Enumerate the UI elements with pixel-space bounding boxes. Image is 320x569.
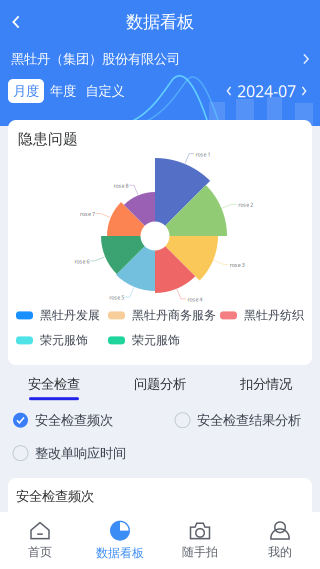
staticText: 随手拍 <box>182 545 218 559</box>
staticText: 首页 <box>28 545 52 559</box>
button[interactable]: 问题分析 <box>107 373 213 403</box>
button[interactable]: 随手拍 <box>160 512 240 568</box>
staticText: 扣分情况 <box>240 376 292 392</box>
button[interactable]: 数据看板 <box>80 512 160 568</box>
button[interactable]: 年度 <box>44 79 82 103</box>
button[interactable]: 自定义 <box>82 79 128 103</box>
staticText: 荣元服饰 <box>40 333 88 348</box>
staticText: rose 3 <box>230 261 245 268</box>
button[interactable]: Next period <box>296 79 312 103</box>
staticText: 数据看板 <box>96 546 144 560</box>
staticText: 问题分析 <box>134 376 186 392</box>
staticText: 安全检查结果分析 <box>197 412 301 428</box>
staticText: 黑牡丹发展 <box>40 308 100 323</box>
staticText: 黑牡丹纺织 <box>244 308 304 323</box>
staticText: 安全检查频次 <box>16 488 94 504</box>
staticText: 安全检查频次 <box>35 412 113 428</box>
staticText: rose 1 <box>196 151 211 158</box>
button[interactable]: 月度 <box>8 79 44 103</box>
staticText: 黑牡丹商务服务 <box>132 308 216 323</box>
staticText: rose 6 <box>74 258 89 265</box>
staticText: 年度 <box>50 83 76 99</box>
staticText: 整改单响应时间 <box>35 445 126 461</box>
staticText: 隐患问题 <box>18 130 78 148</box>
staticText: 2024-07 <box>237 80 296 102</box>
staticText: rose 2 <box>238 201 253 208</box>
button[interactable]: 我的 <box>240 512 320 568</box>
staticText: rose 8 <box>113 182 128 189</box>
staticText: 数据看板 <box>126 11 194 33</box>
button[interactable]: 首页 <box>0 512 80 568</box>
button[interactable]: 安全检查频次 <box>13 412 113 428</box>
staticText: 黑牡丹（集团）股份有限公司 <box>11 51 180 67</box>
button[interactable]: 黑牡丹（集团）股份有限公司 <box>0 47 320 71</box>
staticText: 自定义 <box>85 83 124 99</box>
staticText: rose 4 <box>187 296 202 303</box>
button[interactable]: Previous period <box>221 79 237 103</box>
button[interactable]: Back <box>0 2 32 42</box>
staticText: 我的 <box>268 545 292 559</box>
staticText: 安全检查 <box>28 376 80 392</box>
staticText: rose 7 <box>80 210 95 217</box>
button[interactable]: 扣分情况 <box>213 373 319 403</box>
staticText: 荣元服饰 <box>132 333 180 348</box>
staticText: rose 5 <box>109 294 124 301</box>
button[interactable]: 安全检查结果分析 <box>175 412 301 428</box>
staticText: 月度 <box>13 83 39 99</box>
button[interactable]: 整改单响应时间 <box>13 445 126 461</box>
button[interactable]: 安全检查 <box>1 373 107 403</box>
